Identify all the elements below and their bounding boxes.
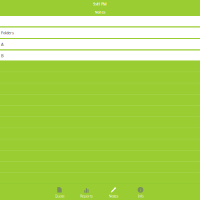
staticText: Quote — [54, 193, 64, 198]
staticText: Folders — [1, 30, 14, 35]
button[interactable]: Folders — [0, 27, 200, 38]
button[interactable]: A — [0, 39, 200, 49]
staticText: Reports — [80, 193, 93, 198]
button[interactable]: i — [127, 183, 154, 200]
staticText: i — [140, 187, 141, 192]
button[interactable]: Quote — [46, 183, 73, 200]
staticText: Notes — [108, 193, 118, 198]
staticText: Info — [137, 193, 143, 198]
staticText: Notes — [94, 9, 105, 15]
staticText: B — [1, 53, 4, 58]
staticText: A — [1, 42, 4, 47]
button[interactable]: B — [0, 50, 200, 61]
staticText: 9:41 PM — [93, 1, 107, 7]
button[interactable]: Reports — [73, 183, 100, 200]
button[interactable]: Notes — [100, 183, 127, 200]
